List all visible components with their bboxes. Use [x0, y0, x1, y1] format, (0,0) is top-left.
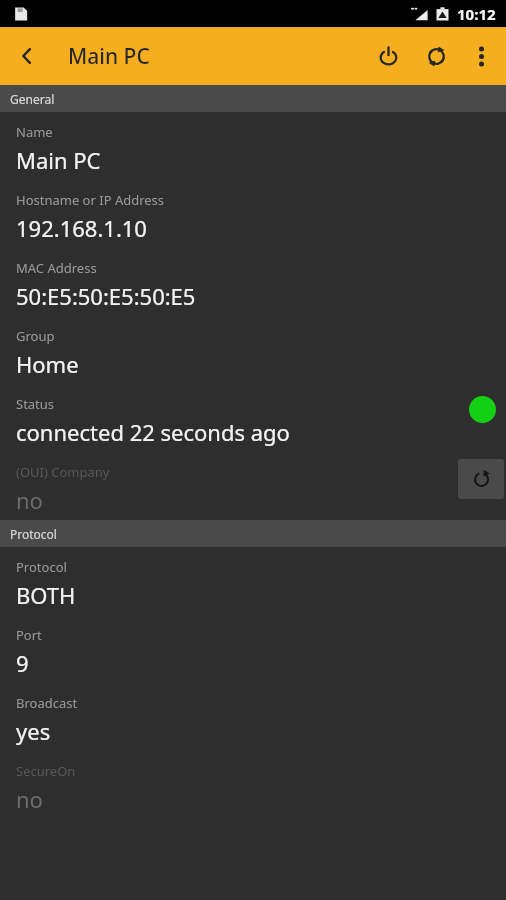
staticText: Hostname or IP Address: [16, 191, 165, 209]
button[interactable]: Protocol: [0, 547, 506, 615]
staticText: Protocol: [10, 526, 57, 542]
staticText: 9: [16, 648, 29, 678]
staticText: BOTH: [16, 580, 76, 610]
button[interactable]: More options: [460, 27, 502, 85]
button[interactable]: Port: [0, 615, 506, 683]
button[interactable]: Group: [0, 316, 506, 384]
button[interactable]: MAC Address: [0, 248, 506, 316]
staticText: Home: [16, 349, 79, 379]
staticText: MAC Address: [16, 259, 97, 277]
button[interactable]: SecureOn: [0, 751, 506, 819]
button[interactable]: Hostname or IP Address: [0, 180, 506, 248]
button[interactable]: Status: [0, 384, 506, 452]
staticText: connected 22 seconds ago: [16, 417, 290, 447]
button[interactable]: Refresh: [412, 27, 460, 85]
button[interactable]: Refresh OUI company: [458, 459, 504, 499]
button[interactable]: Wake device: [364, 27, 412, 85]
staticText: Main PC: [16, 145, 101, 175]
staticText: no: [16, 784, 43, 814]
staticText: SecureOn: [16, 762, 76, 780]
staticText: Port: [16, 626, 42, 644]
staticText: Protocol: [16, 558, 67, 576]
button[interactable]: Name: [0, 112, 506, 180]
staticText: 10:12: [457, 4, 496, 24]
staticText: Name: [16, 123, 53, 141]
button[interactable]: Broadcast: [0, 683, 506, 751]
staticText: Broadcast: [16, 694, 78, 712]
staticText: Main PC: [68, 42, 150, 71]
staticText: yes: [16, 716, 51, 746]
staticText: Group: [16, 327, 55, 345]
staticText: Status: [16, 395, 55, 413]
staticText: 192.168.1.10: [16, 213, 147, 243]
button[interactable]: Back: [0, 27, 54, 85]
staticText: General: [10, 91, 55, 107]
staticText: (OUI) Company: [16, 463, 110, 481]
staticText: no: [16, 485, 43, 515]
staticText: 50:E5:50:E5:50:E5: [16, 281, 196, 311]
